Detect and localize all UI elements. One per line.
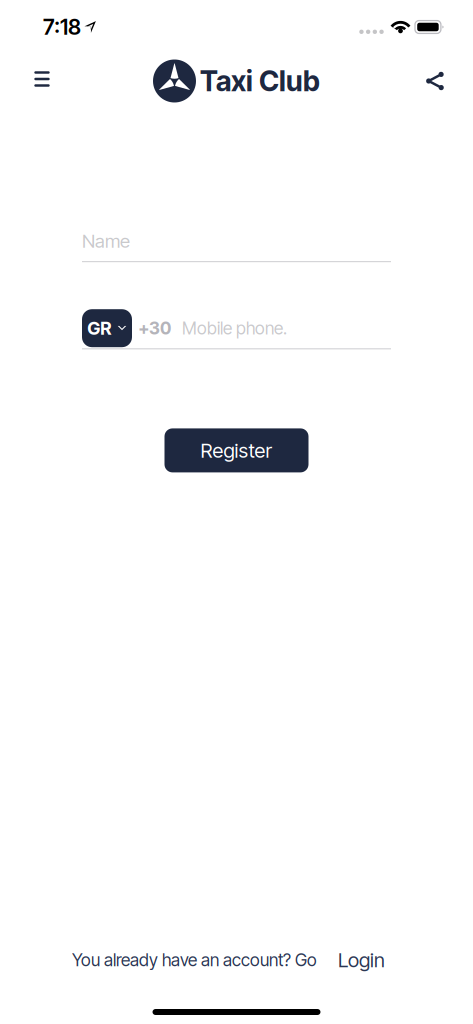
button[interactable]: Share <box>414 59 458 103</box>
staticText: Name <box>82 230 130 252</box>
staticText: Mobile phone. <box>182 318 287 339</box>
staticText: 7:18 <box>43 14 81 40</box>
staticText: You already have an account? Go <box>72 949 317 970</box>
staticText: Login <box>338 948 385 972</box>
button[interactable]: Login <box>317 948 385 972</box>
staticText: GR <box>87 317 111 339</box>
staticText: Taxi Club <box>200 64 320 98</box>
staticText: Register <box>200 438 272 462</box>
staticText: +30 <box>138 318 171 339</box>
button[interactable]: GR <box>82 309 132 347</box>
button[interactable]: Menu <box>20 57 64 101</box>
button[interactable]: Register <box>164 428 308 472</box>
